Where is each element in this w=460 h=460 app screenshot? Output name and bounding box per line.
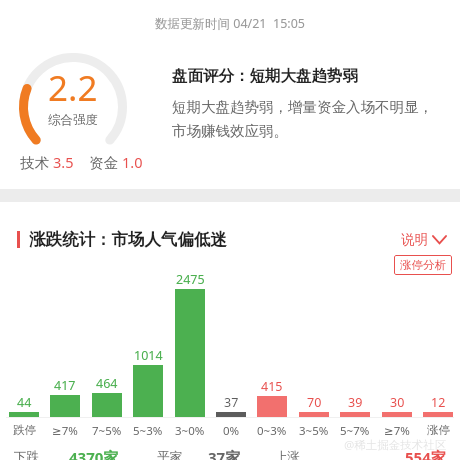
staticText: @稀土掘金技术社区	[344, 437, 447, 453]
staticText: ≥7%	[52, 423, 78, 439]
staticText: 554家	[405, 447, 446, 460]
staticText: 3~0%	[175, 423, 205, 439]
button[interactable]: 说明	[401, 231, 446, 248]
staticText: 0%	[223, 423, 240, 439]
staticText: 涨停分析	[400, 258, 446, 272]
button[interactable]: 涨停分析	[394, 255, 452, 275]
staticText: 涨停	[427, 423, 450, 437]
staticText: 3.5	[53, 152, 74, 172]
staticText: 464	[96, 375, 118, 392]
staticText: 数据更新时间 04/21 15:05	[155, 15, 305, 32]
staticText: 短期大盘趋势弱，增量资金入场不明显，市场赚钱效应弱。	[172, 98, 444, 140]
staticText: 盘面评分：短期大盘趋势弱	[172, 66, 358, 86]
staticText: ≥7%	[384, 423, 410, 439]
staticText: 415	[261, 378, 283, 395]
staticText: 1.0	[122, 152, 143, 172]
staticText: 39	[348, 394, 363, 411]
staticText: 417	[54, 377, 76, 394]
staticText: 30	[390, 394, 405, 411]
staticText: 7~5%	[92, 423, 122, 439]
staticText: 0~3%	[257, 423, 287, 439]
staticText: 下跌	[14, 449, 39, 460]
staticText: 70	[307, 394, 322, 411]
staticText: 上涨	[275, 449, 300, 460]
staticText: 平家	[157, 449, 182, 460]
staticText: 2475	[176, 271, 205, 288]
staticText: 5~3%	[133, 423, 163, 439]
staticText: 4370家	[69, 447, 119, 460]
staticText: 37家	[208, 447, 241, 460]
other: 展开说明	[433, 235, 446, 244]
staticText: 技术	[20, 152, 53, 172]
staticText: 44	[17, 394, 32, 411]
staticText: 资金	[89, 152, 122, 172]
staticText: 综合强度	[48, 112, 98, 128]
staticText: 12	[431, 394, 446, 411]
staticText: 2.2	[48, 64, 98, 112]
staticText: 1014	[134, 347, 163, 364]
staticText: 37	[224, 394, 239, 411]
staticText: 5~7%	[340, 423, 370, 439]
staticText: 涨跌统计：市场人气偏低迷	[29, 229, 227, 250]
staticText: 说明	[401, 231, 428, 248]
staticText: 3~5%	[299, 423, 329, 439]
staticText: 跌停	[13, 423, 36, 437]
